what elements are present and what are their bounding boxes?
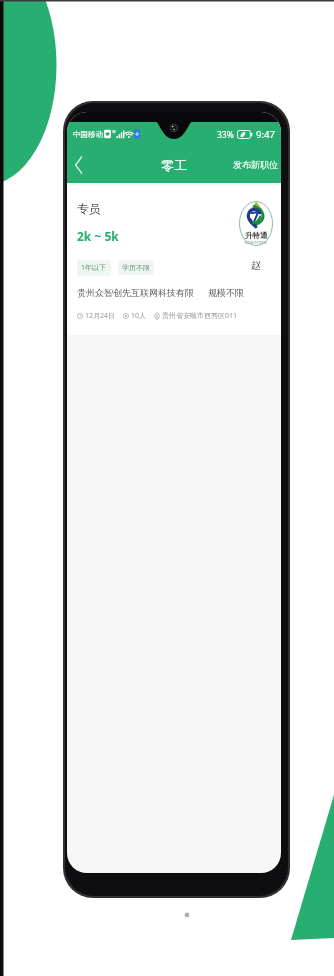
staticText: 贵州省安顺市西秀区011 <box>162 311 238 321</box>
staticText: 专员 <box>77 201 101 216</box>
button[interactable]: Back <box>67 150 91 180</box>
staticText: 10人 <box>131 311 147 321</box>
staticText: 9:47 <box>256 128 275 141</box>
button[interactable]: 专员 <box>67 186 281 335</box>
staticText: 1年以下 <box>81 263 107 273</box>
staticText: 赵 <box>251 259 261 272</box>
staticText: 2k ~ 5k <box>77 228 119 244</box>
staticText: 贵州众智创先互联网科技有限 <box>77 287 194 298</box>
staticText: 12月24日 <box>85 311 116 321</box>
staticText: 升特通 <box>245 231 268 240</box>
button[interactable]: 发布新职位 <box>226 153 281 176</box>
staticText: 零工 <box>161 157 187 173</box>
staticText: 33% <box>217 129 234 141</box>
staticText: SHENGTETONG <box>244 241 268 245</box>
staticText: 学历不限 <box>122 263 150 272</box>
staticText: 中国移动 <box>73 130 103 139</box>
staticText: 规模不限 <box>208 287 244 298</box>
